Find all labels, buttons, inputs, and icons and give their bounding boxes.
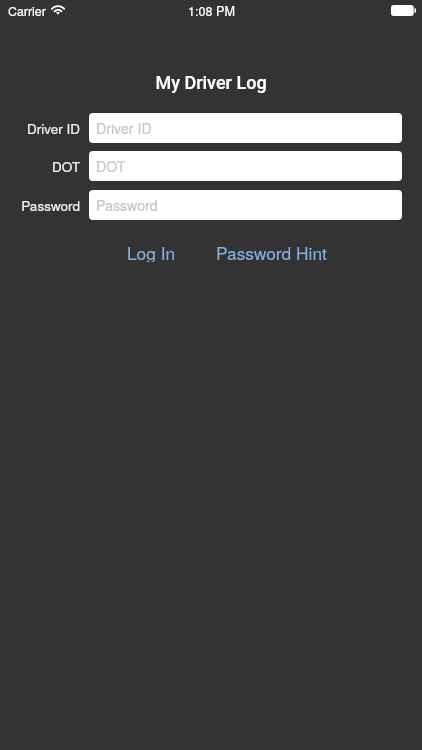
staticText: Driver ID [27, 119, 80, 138]
staticText: My Driver Log [155, 72, 267, 93]
staticText: 1:08 PM [188, 2, 235, 20]
other: Wi-Fi signal [51, 5, 65, 15]
staticText: DOT [96, 156, 126, 176]
other: Battery full [391, 5, 416, 16]
button[interactable]: Driver ID [89, 113, 402, 143]
staticText: Carrier [8, 2, 46, 20]
staticText: Password Hint [216, 240, 327, 262]
staticText: DOT [52, 157, 80, 176]
staticText: Password [96, 195, 158, 215]
staticText: Driver ID [96, 118, 152, 138]
button[interactable]: Password Hint [210, 240, 333, 262]
button[interactable]: DOT [89, 151, 402, 181]
button[interactable]: Password [89, 190, 402, 220]
button[interactable]: Log In [121, 240, 182, 262]
staticText: Password [21, 196, 80, 215]
staticText: Log In [127, 240, 176, 262]
